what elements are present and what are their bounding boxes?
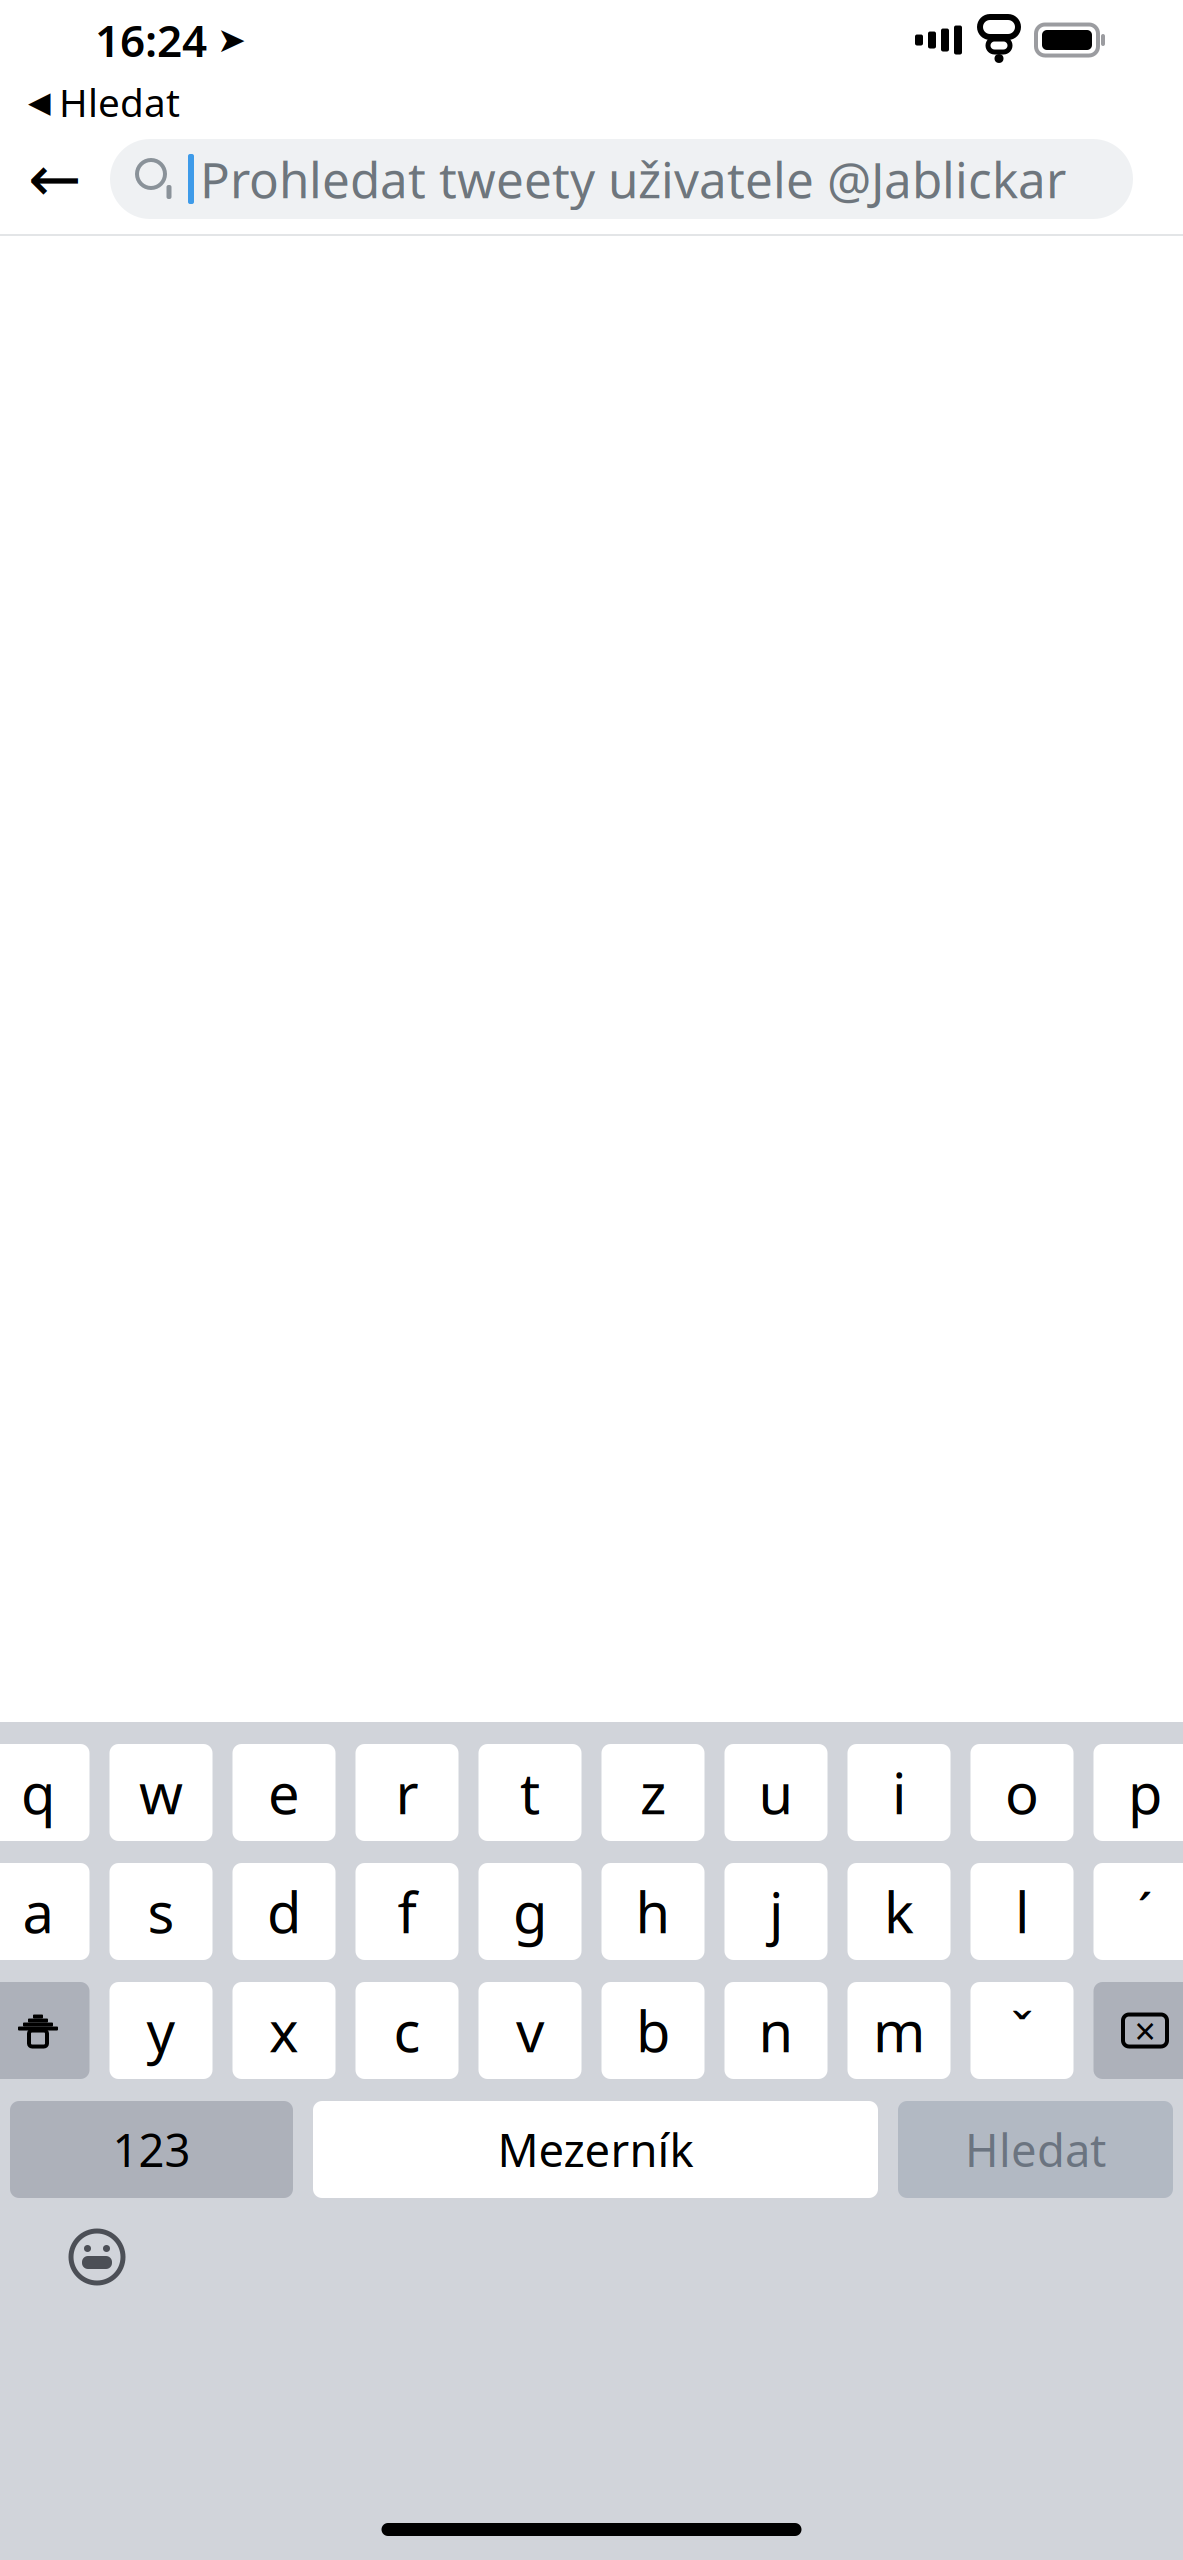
staticText: i [892,1755,906,1830]
button[interactable]: q [0,1744,89,1841]
button[interactable]: u [724,1744,827,1841]
staticText: w [139,1755,183,1830]
button[interactable]: c [355,1982,458,2079]
button[interactable]: Mezerník [313,2101,878,2198]
staticText: f [397,1874,416,1949]
staticText: q [21,1755,55,1830]
staticText: n [758,1993,793,2068]
button[interactable]: r [355,1744,458,1841]
staticText: g [513,1874,547,1949]
staticText: v [516,1993,544,2068]
staticText: x [269,1993,299,2068]
button[interactable]: y [109,1982,212,2079]
button[interactable]: m [847,1982,950,2079]
button[interactable]: Zpět [0,129,110,229]
staticText: p [1128,1755,1162,1830]
button[interactable]: o [970,1744,1073,1841]
staticText: ´ [1137,1876,1152,1947]
staticText: m [873,1993,925,2068]
staticText: Mezerník [497,2119,693,2180]
button[interactable]: v [478,1982,581,2079]
staticText: ← [28,143,82,215]
staticText: Hledat [965,2119,1106,2180]
button[interactable]: Emoji [58,2218,136,2296]
staticText: o [1005,1755,1039,1830]
button[interactable]: Hledat [898,2101,1173,2198]
staticText: r [395,1755,418,1830]
button[interactable]: x [232,1982,335,2079]
staticText: e [268,1755,300,1830]
button[interactable]: ´ [1093,1863,1183,1960]
staticText: a [22,1874,53,1949]
button[interactable]: w [109,1744,212,1841]
button[interactable]: f [355,1863,458,1960]
staticText: ˇ [1011,1995,1033,2066]
staticText: Prohledat tweety uživatele @Jablickar [200,146,1066,212]
button[interactable]: Smazat [1093,1982,1183,2079]
button[interactable]: Shift [0,1982,89,2079]
staticText: z [640,1755,666,1830]
staticText: u [758,1755,793,1830]
staticText: × [1134,2006,1155,2055]
staticText: b [636,1993,670,2068]
staticText: h [635,1874,670,1949]
button[interactable]: Prohledat tweety uživatele @Jablickar [110,139,1133,219]
staticText: d [267,1874,301,1949]
staticText: ➤ [217,20,246,60]
button[interactable]: n [724,1982,827,2079]
button[interactable]: ˇ [970,1982,1073,2079]
staticText: k [884,1874,914,1949]
staticText: 123 [112,2119,190,2180]
staticText: c [393,1993,420,2068]
button[interactable]: a [0,1863,89,1960]
button[interactable]: ◀ [0,72,180,132]
button[interactable]: k [847,1863,950,1960]
button[interactable]: h [601,1863,704,1960]
button[interactable]: g [478,1863,581,1960]
button[interactable]: i [847,1744,950,1841]
button[interactable]: d [232,1863,335,1960]
button[interactable]: e [232,1744,335,1841]
button[interactable]: 123 [10,2101,293,2198]
staticText: y [146,1993,175,2068]
staticText: s [147,1874,174,1949]
staticText: j [769,1874,783,1949]
button[interactable]: l [970,1863,1073,1960]
staticText: 16:24 [95,11,207,69]
staticText: ◀ [28,85,51,119]
button[interactable]: s [109,1863,212,1960]
staticText: t [520,1755,540,1830]
button[interactable]: b [601,1982,704,2079]
button[interactable]: j [724,1863,827,1960]
button[interactable]: t [478,1744,581,1841]
staticText: l [1015,1874,1029,1949]
staticText: Hledat [59,76,180,128]
button[interactable]: p [1093,1744,1183,1841]
button[interactable]: z [601,1744,704,1841]
